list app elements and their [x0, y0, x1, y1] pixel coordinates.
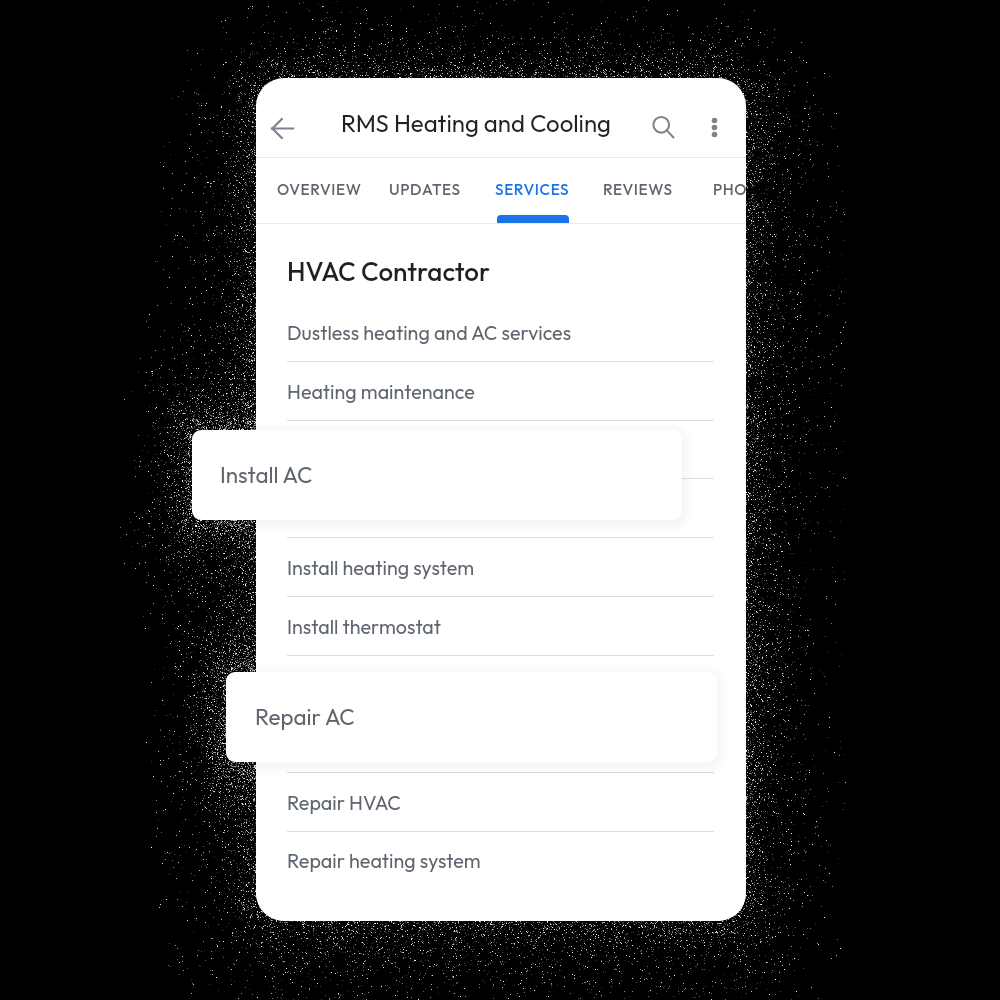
staticText: UPDATES: [389, 180, 461, 199]
staticText: Repair AC: [255, 703, 355, 731]
button[interactable]: More options: [694, 107, 734, 147]
staticText: Install AC: [220, 461, 313, 489]
staticText: REVIEWS: [603, 180, 673, 199]
staticText: Dustless heating and AC services: [287, 320, 572, 345]
button[interactable]: PHOTOS: [692, 158, 746, 220]
button[interactable]: Install heating system: [256, 538, 746, 597]
button[interactable]: Install AC: [192, 430, 682, 520]
staticText: Install heating system: [287, 555, 475, 580]
button[interactable]: Repair heating system: [256, 831, 746, 890]
staticText: Install thermostat: [287, 614, 442, 639]
button[interactable]: SERVICES: [479, 158, 585, 220]
staticText: RMS Heating and Cooling: [341, 108, 611, 138]
staticText: Repair heating system: [287, 848, 481, 873]
button[interactable]: Heating maintenance: [256, 362, 746, 421]
button[interactable]: REVIEWS: [585, 158, 691, 220]
staticText: OVERVIEW: [277, 180, 362, 199]
button[interactable]: Dustless heating and AC services: [256, 303, 746, 362]
staticText: Heating maintenance: [287, 379, 475, 404]
staticText: Repair HVAC: [287, 790, 401, 815]
staticText: PHOTOS: [713, 180, 746, 199]
button[interactable]: Install ductless AC: [256, 479, 746, 538]
button[interactable]: Install AC: [256, 420, 746, 479]
button[interactable]: Repair ductless AC: [256, 714, 746, 773]
button[interactable]: Search: [643, 107, 683, 147]
button[interactable]: Repair HVAC: [256, 773, 746, 832]
button[interactable]: OVERVIEW: [266, 158, 372, 220]
staticText: SERVICES: [495, 180, 570, 199]
button[interactable]: Repair AC: [226, 672, 717, 762]
button[interactable]: Repair AC: [256, 655, 746, 714]
staticText: HVAC Contractor: [287, 255, 491, 288]
button[interactable]: Install thermostat: [256, 597, 746, 656]
button[interactable]: UPDATES: [372, 158, 478, 220]
button[interactable]: Back: [262, 108, 302, 148]
